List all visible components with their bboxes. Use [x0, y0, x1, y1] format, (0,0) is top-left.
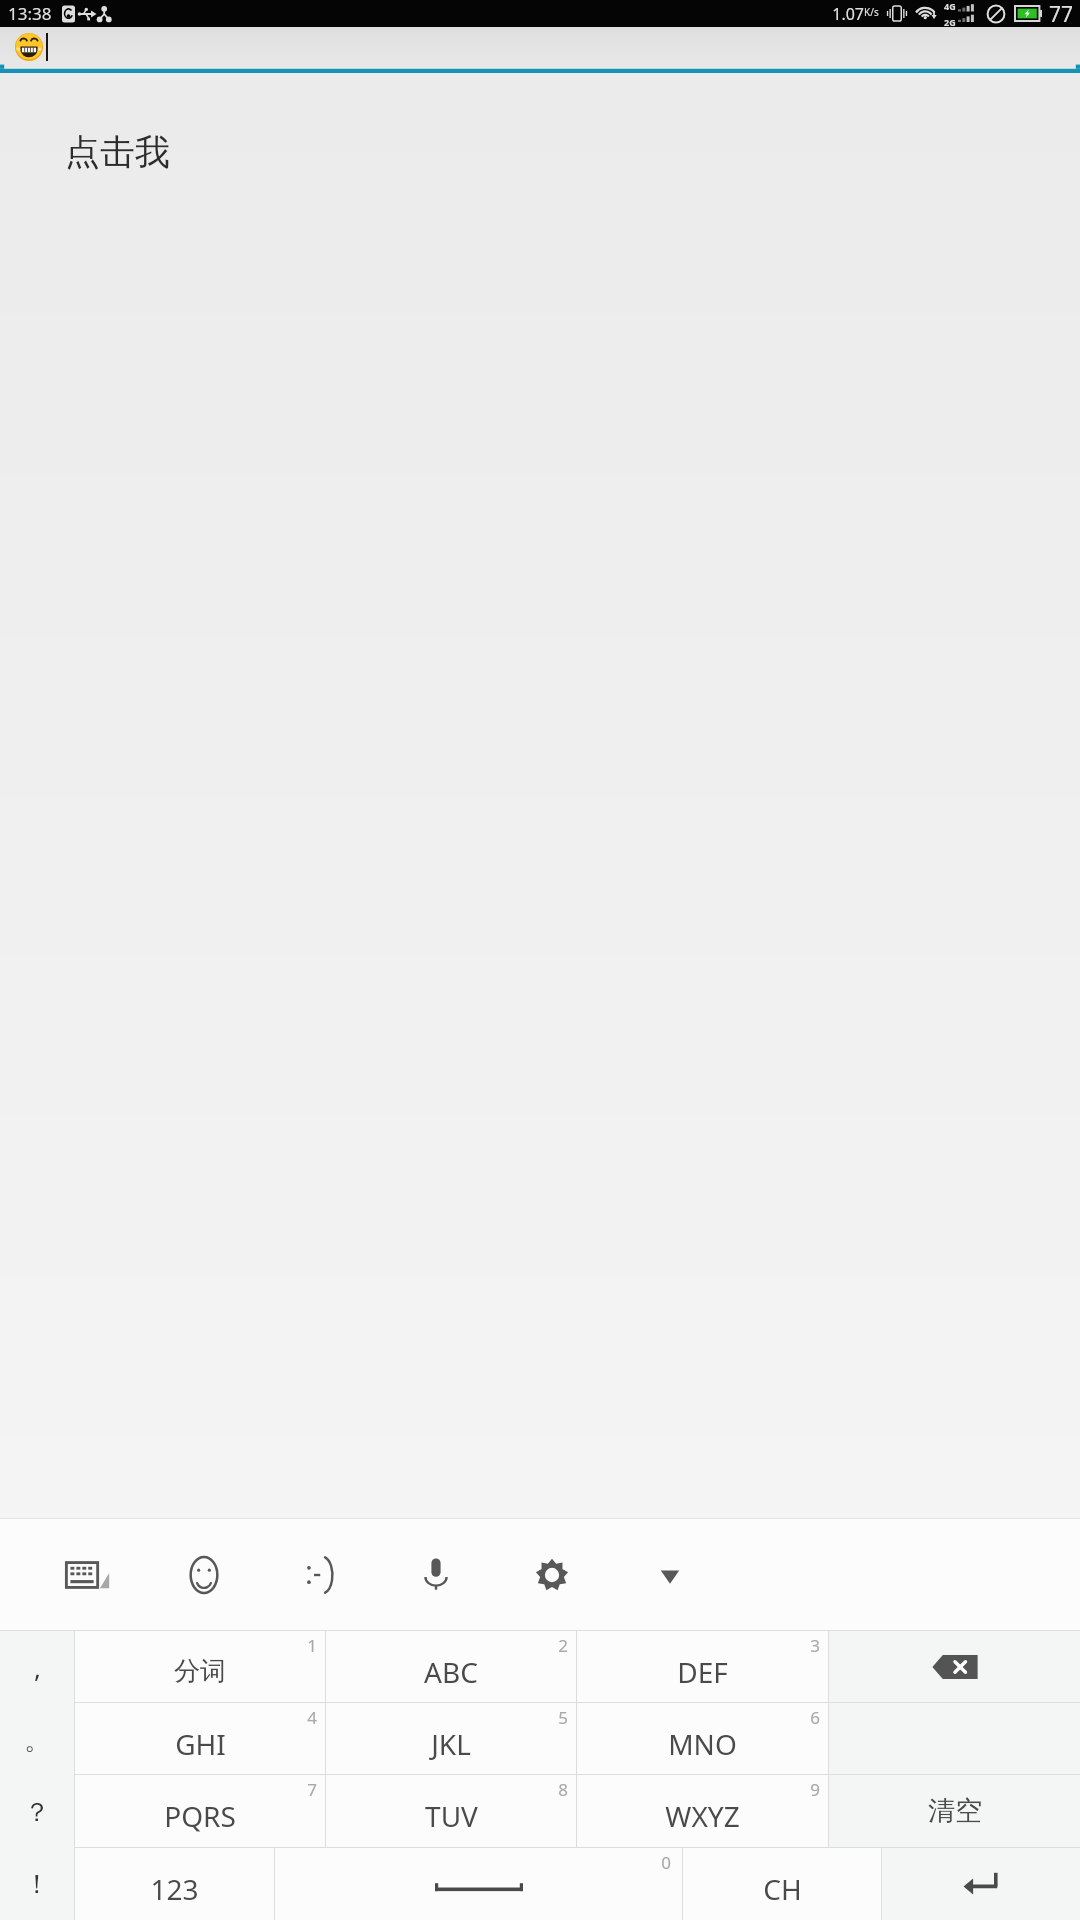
staticText: 4G — [944, 0, 956, 12]
button[interactable]: Keyboard layout — [52, 1539, 124, 1611]
button[interactable]: CH — [683, 1848, 881, 1920]
button[interactable]: 7 — [75, 1775, 325, 1847]
button[interactable]: ！ — [0, 1848, 74, 1920]
button[interactable]: 1 — [75, 1631, 325, 1702]
button[interactable]: Enter — [882, 1848, 1080, 1920]
staticText: MNO — [668, 1725, 737, 1763]
button[interactable]: 清空 — [829, 1775, 1080, 1847]
staticText: 8 — [558, 1778, 568, 1801]
staticText: WXYZ — [665, 1797, 740, 1835]
staticText: 2G — [944, 16, 956, 27]
button[interactable]: Emoticons — [284, 1539, 356, 1611]
staticText: 1.07 — [832, 3, 864, 25]
button[interactable]: 2 — [326, 1631, 576, 1702]
staticText: 清空 — [928, 1794, 982, 1828]
staticText: ！ — [24, 1868, 50, 1901]
staticText: 13:38 — [8, 2, 52, 25]
button[interactable]: 3 — [577, 1631, 828, 1702]
staticText: 。 — [24, 1724, 50, 1757]
staticText: 4 — [307, 1706, 317, 1729]
button[interactable]: Backspace — [829, 1631, 1080, 1702]
button[interactable]: 4 — [75, 1703, 325, 1774]
staticText: GHI — [175, 1725, 226, 1763]
button[interactable]: Settings — [516, 1539, 588, 1611]
button[interactable]: Emoji — [168, 1539, 240, 1611]
button[interactable]: 8 — [326, 1775, 576, 1847]
button[interactable]: Space — [275, 1848, 682, 1920]
staticText: TUV — [425, 1797, 478, 1835]
button[interactable]: Voice input — [400, 1539, 472, 1611]
button[interactable]: ？ — [0, 1776, 74, 1848]
staticText: K/s — [864, 5, 879, 19]
staticText: 2 — [558, 1634, 568, 1657]
staticText: JKL — [431, 1725, 471, 1763]
button[interactable]: 5 — [326, 1703, 576, 1774]
staticText: CH — [763, 1870, 802, 1908]
staticText: 分词 — [174, 1655, 226, 1688]
button[interactable]: 6 — [577, 1703, 828, 1774]
staticText: 3 — [810, 1634, 820, 1657]
staticText: 点击我 — [65, 130, 170, 174]
staticText: , — [34, 1650, 41, 1685]
button[interactable]: 。 — [0, 1704, 74, 1776]
staticText: 7 — [307, 1778, 317, 1801]
staticText: 0 — [661, 1851, 671, 1874]
staticText: 5 — [558, 1706, 568, 1729]
button[interactable]: Text input — [0, 27, 1080, 73]
button[interactable]: Hide keyboard — [634, 1539, 706, 1611]
button[interactable]: 123 — [75, 1848, 274, 1920]
button[interactable]: 9 — [577, 1775, 828, 1847]
staticText: 77 — [1048, 0, 1073, 27]
staticText: 9 — [810, 1778, 820, 1801]
staticText: 123 — [150, 1870, 199, 1908]
button[interactable]: , — [0, 1631, 74, 1704]
staticText: PQRS — [164, 1797, 236, 1835]
staticText: ？ — [24, 1796, 50, 1829]
staticText: 6 — [810, 1706, 820, 1729]
staticText: DEF — [677, 1653, 728, 1691]
staticText: ABC — [424, 1653, 478, 1691]
staticText: 1 — [307, 1634, 317, 1657]
